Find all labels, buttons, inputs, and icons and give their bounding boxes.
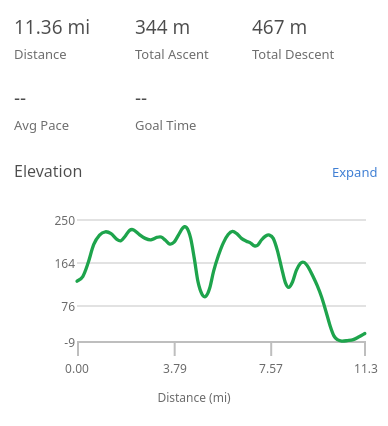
staticText: Expand [332,163,378,181]
staticText: 11.36 mi [14,14,91,40]
button[interactable]: 344 m [135,14,249,63]
button[interactable]: -- [14,85,132,134]
staticText: 76 [10,298,75,314]
staticText: -- [14,85,27,111]
button[interactable]: Elevation [8,155,89,187]
other: Elevation chart [0,0,388,426]
staticText: 11.3 [346,360,386,376]
button[interactable]: Expand [326,158,384,186]
staticText: 250 [10,212,75,228]
staticText: 7.57 [251,360,291,376]
button[interactable]: 467 m [252,14,376,63]
staticText: Avg Pace [14,116,70,134]
staticText: Elevation [14,160,83,182]
staticText: 164 [10,255,75,271]
staticText: Total Descent [252,45,335,63]
staticText: Total Ascent [135,45,209,63]
staticText: -- [135,85,148,111]
staticText: Distance (mi) [0,389,388,405]
staticText: 344 m [135,14,191,40]
staticText: -9 [10,334,75,350]
staticText: 467 m [252,14,308,40]
staticText: 3.79 [155,360,195,376]
staticText: 0.00 [57,360,97,376]
button[interactable]: -- [135,85,249,134]
button[interactable]: 11.36 mi [14,14,132,63]
staticText: Distance [14,45,67,63]
staticText: Goal Time [135,116,197,134]
